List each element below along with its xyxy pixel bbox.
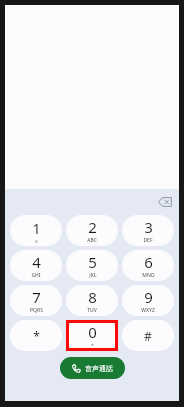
button[interactable]: Backspace xyxy=(155,192,175,212)
button[interactable]: 1 xyxy=(10,215,62,246)
staticText: 0 xyxy=(88,322,97,342)
button[interactable]: 音声通話 xyxy=(60,357,125,379)
staticText: ABC xyxy=(87,237,97,244)
staticText: 4 xyxy=(32,252,41,272)
button[interactable]: 7 xyxy=(10,285,62,316)
staticText: 7 xyxy=(32,287,41,307)
button[interactable]: * xyxy=(10,320,62,351)
staticText: 9 xyxy=(144,287,153,307)
staticText: + xyxy=(91,342,94,349)
button[interactable]: 2 xyxy=(66,215,118,246)
staticText: 3 xyxy=(144,217,153,237)
staticText: DEF xyxy=(143,237,153,244)
staticText: # xyxy=(144,328,152,344)
staticText: ∞ xyxy=(34,238,39,244)
button[interactable]: # xyxy=(122,320,174,351)
staticText: 2 xyxy=(88,217,97,237)
staticText: 音声通話 xyxy=(85,364,113,373)
button[interactable]: 8 xyxy=(66,285,118,316)
staticText: MNO xyxy=(142,272,155,279)
staticText: 5 xyxy=(88,252,97,272)
button[interactable]: 5 xyxy=(66,250,118,281)
button[interactable]: 0 xyxy=(66,320,118,351)
staticText: 1 xyxy=(32,218,41,238)
staticText: WXYZ xyxy=(141,307,155,314)
staticText: JKL xyxy=(89,272,97,279)
button[interactable]: 6 xyxy=(122,250,174,281)
staticText: 8 xyxy=(88,287,97,307)
staticText: * xyxy=(33,328,40,344)
staticText: 6 xyxy=(144,252,153,272)
staticText: GHI xyxy=(31,272,41,279)
button[interactable]: 9 xyxy=(122,285,174,316)
staticText: TUV xyxy=(87,307,97,314)
staticText: PQRS xyxy=(30,307,43,314)
button[interactable]: 3 xyxy=(122,215,174,246)
button[interactable]: 4 xyxy=(10,250,62,281)
